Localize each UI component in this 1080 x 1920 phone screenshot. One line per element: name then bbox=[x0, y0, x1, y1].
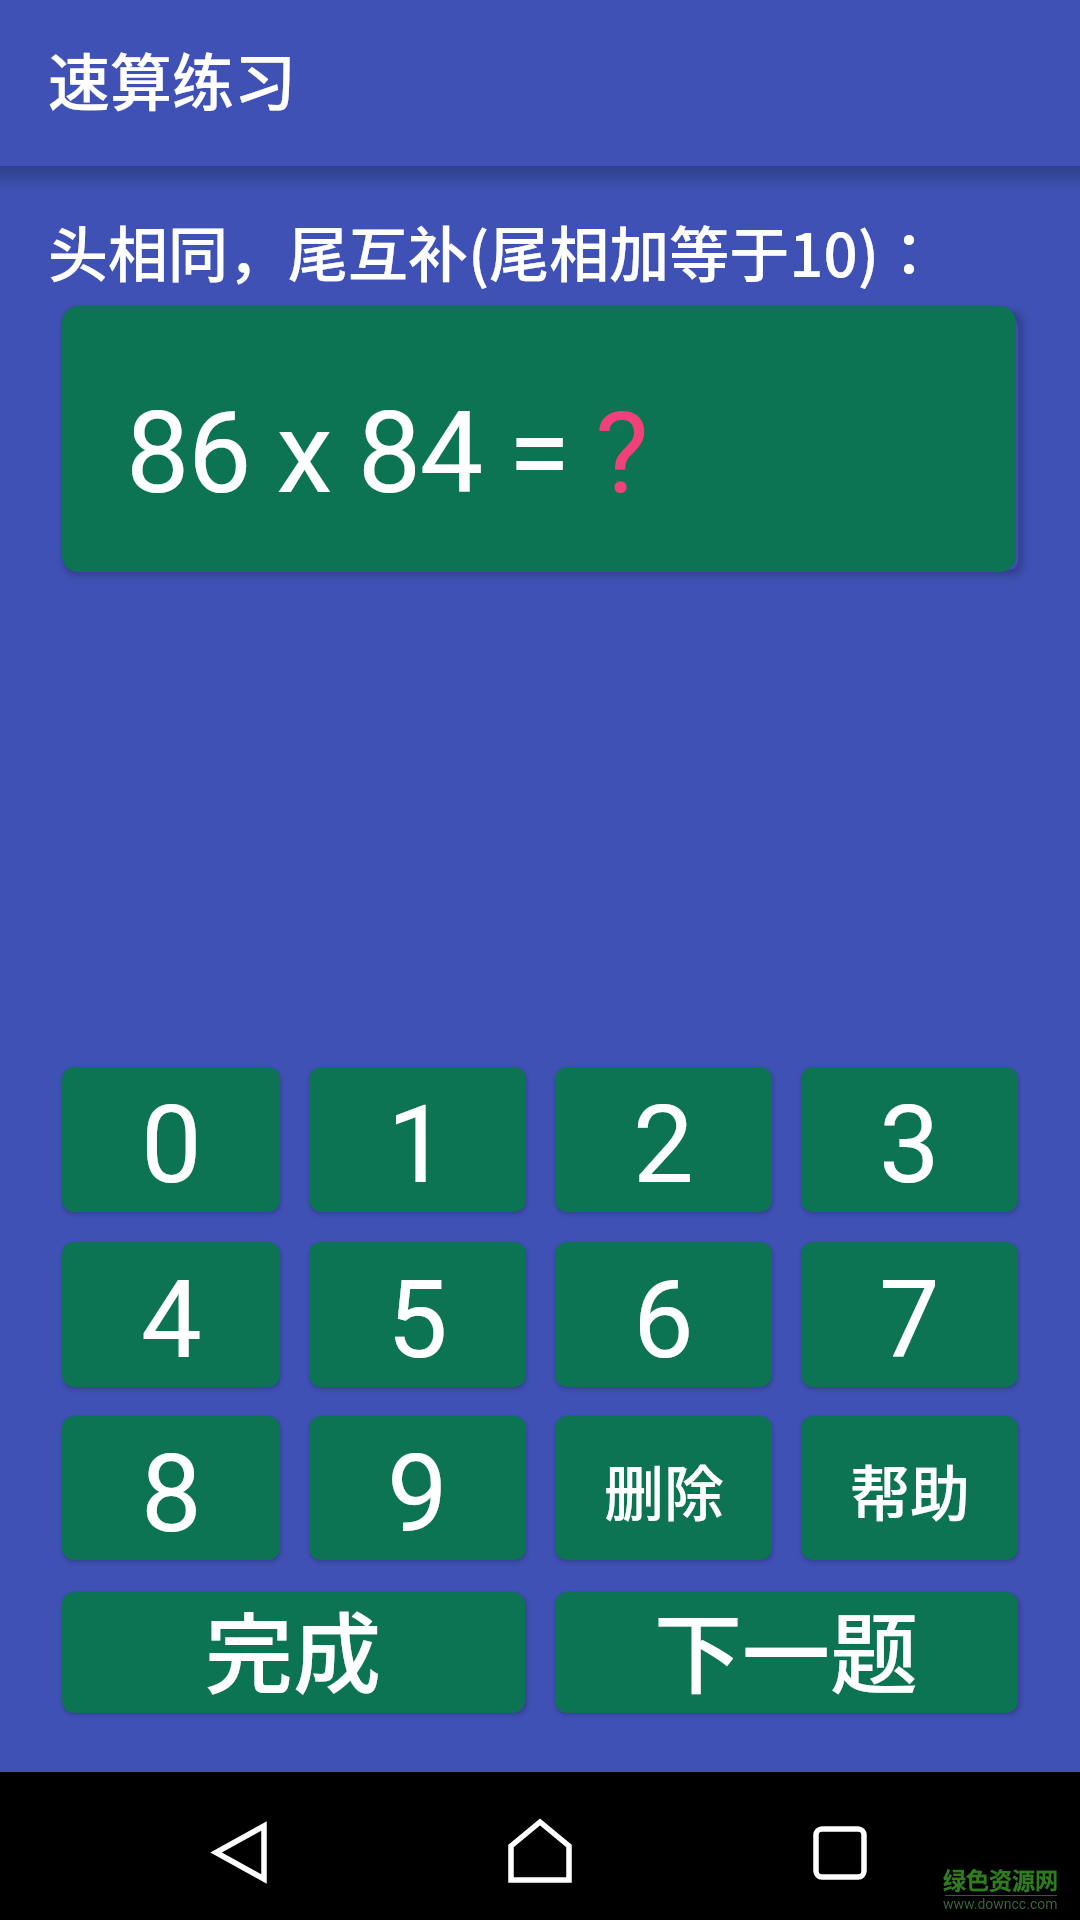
staticText: 9 bbox=[387, 1431, 448, 1558]
button[interactable] bbox=[720, 1772, 1080, 1920]
button[interactable]: 6 bbox=[555, 1242, 772, 1387]
button[interactable]: 7 bbox=[801, 1242, 1018, 1387]
button[interactable] bbox=[360, 1772, 720, 1920]
button[interactable]: 下一题 bbox=[555, 1592, 1018, 1713]
button[interactable]: 0 bbox=[62, 1067, 280, 1212]
staticText: 删除 bbox=[604, 1446, 724, 1533]
staticText: 头相同，尾互补(尾相加等于10)： bbox=[48, 207, 940, 294]
staticText: www.downcc.com bbox=[943, 1896, 1058, 1912]
staticText: 绿色资源网 bbox=[943, 1862, 1058, 1895]
button[interactable]: 4 bbox=[62, 1242, 280, 1387]
button[interactable]: 删除 bbox=[555, 1416, 772, 1560]
staticText: 86 x 84 = ? bbox=[126, 387, 648, 519]
button[interactable]: 1 bbox=[309, 1067, 526, 1212]
staticText: 0 bbox=[141, 1082, 202, 1209]
staticText: 3 bbox=[879, 1082, 940, 1209]
button[interactable]: 86 x 84 = ? bbox=[62, 306, 1016, 572]
button[interactable]: 9 bbox=[309, 1416, 526, 1560]
staticText: 下一题 bbox=[654, 1592, 919, 1705]
staticText: 7 bbox=[879, 1257, 940, 1384]
staticText: 完成 bbox=[205, 1592, 382, 1705]
staticText: 6 bbox=[633, 1257, 694, 1384]
button[interactable] bbox=[0, 1772, 360, 1920]
button[interactable]: 2 bbox=[555, 1067, 772, 1212]
button[interactable]: 8 bbox=[62, 1416, 280, 1560]
button[interactable]: 完成 bbox=[62, 1592, 525, 1713]
button[interactable]: 5 bbox=[309, 1242, 526, 1387]
staticText: 速算练习 bbox=[48, 34, 297, 124]
staticText: 4 bbox=[141, 1257, 202, 1384]
staticText: 帮助 bbox=[850, 1446, 970, 1533]
staticText: 2 bbox=[633, 1082, 694, 1209]
staticText: 8 bbox=[141, 1431, 202, 1558]
staticText: 5 bbox=[387, 1257, 448, 1384]
button[interactable]: 3 bbox=[801, 1067, 1018, 1212]
staticText: 1 bbox=[387, 1082, 448, 1209]
button[interactable]: 帮助 bbox=[801, 1416, 1018, 1560]
